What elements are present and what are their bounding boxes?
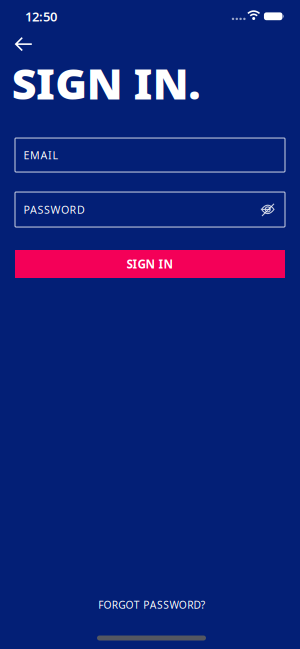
button[interactable]: Show password xyxy=(259,202,275,216)
button[interactable]: Back xyxy=(14,37,38,53)
staticText: SIGN IN xyxy=(126,256,173,272)
button[interactable]: FORGOT PASSWORD? xyxy=(98,598,205,612)
staticText: SIGN IN. xyxy=(13,54,199,112)
button[interactable]: PASSWORD xyxy=(15,192,285,227)
staticText: 12:50 xyxy=(25,8,57,25)
staticText: PASSWORD xyxy=(23,202,85,217)
button[interactable]: EMAIL xyxy=(15,138,285,172)
staticText: FORGOT PASSWORD? xyxy=(98,598,205,612)
staticText: EMAIL xyxy=(23,148,58,162)
button[interactable]: SIGN IN xyxy=(15,250,285,278)
